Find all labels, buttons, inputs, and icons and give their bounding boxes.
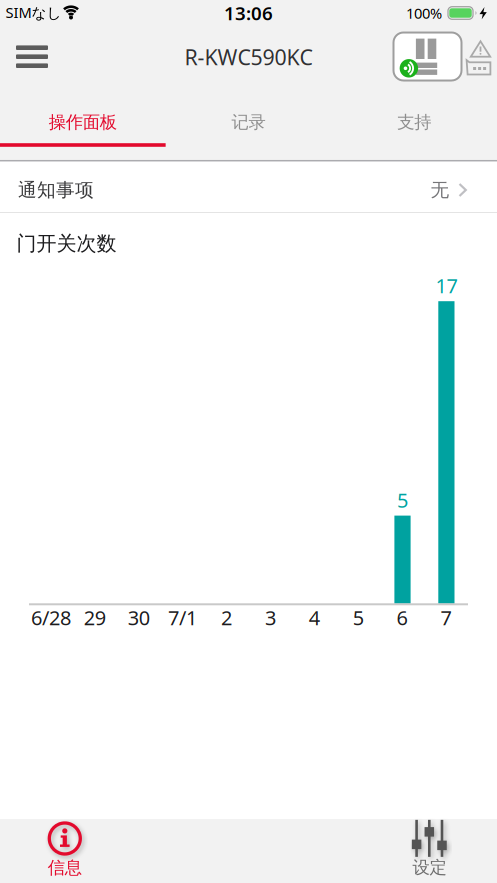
button[interactable]: 信息 — [25, 822, 105, 878]
button[interactable]: 设定 — [389, 821, 469, 877]
button[interactable]: Menu — [10, 35, 54, 79]
staticText: 5 — [397, 487, 408, 513]
staticText: 支持 — [397, 112, 431, 133]
staticText: 门开关次数 — [16, 231, 116, 256]
button[interactable]: 通知事项 — [0, 162, 497, 212]
staticText: 17 — [435, 272, 457, 299]
staticText: 6 — [397, 604, 408, 631]
staticText: 3 — [265, 604, 276, 631]
staticText: 无 — [430, 178, 449, 201]
staticText: 通知事项 — [18, 178, 94, 201]
staticText: 记录 — [231, 112, 265, 133]
staticText: 7/1 — [168, 604, 197, 631]
staticText: 操作面板 — [49, 112, 117, 133]
button[interactable]: 记录 — [166, 100, 331, 144]
button[interactable]: Refrigerator status — [393, 32, 461, 80]
staticText: 13:06 — [224, 1, 273, 25]
staticText: R-KWC590KC — [184, 43, 312, 71]
staticText: 30 — [128, 604, 150, 631]
staticText: SIMなし — [5, 2, 61, 22]
staticText: 29 — [84, 604, 106, 631]
staticText: 5 — [353, 604, 364, 631]
staticText: 设定 — [412, 857, 446, 878]
staticText: 2 — [221, 604, 232, 631]
staticText: 信息 — [48, 857, 82, 878]
button[interactable]: 支持 — [331, 100, 497, 144]
button[interactable]: 操作面板 — [0, 100, 166, 144]
staticText: 7 — [440, 604, 451, 631]
staticText: 6/28 — [31, 604, 71, 631]
button[interactable]: Alert history — [464, 36, 496, 80]
staticText: 4 — [309, 604, 320, 631]
staticText: 100% — [406, 3, 442, 23]
